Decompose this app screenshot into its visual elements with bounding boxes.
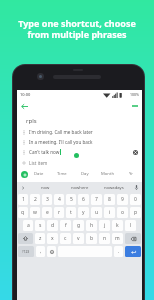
button[interactable]: Back (17, 99, 31, 113)
staticText: a (27, 222, 30, 229)
staticText: h (90, 222, 94, 229)
button[interactable]: l (125, 220, 136, 231)
staticText: w (33, 209, 37, 216)
button[interactable]: e (42, 207, 52, 218)
button[interactable]: Emoji (47, 246, 56, 257)
button[interactable]: m (112, 233, 123, 244)
button[interactable]: b (86, 233, 97, 244)
staticText: 4 (58, 196, 61, 203)
button[interactable]: q (18, 207, 28, 218)
button[interactable]: Shift (18, 233, 33, 244)
staticText: rpls (26, 117, 37, 125)
staticText: d (51, 222, 55, 229)
button[interactable]: More options (128, 99, 142, 113)
button[interactable]: c (60, 233, 71, 244)
staticText: , (40, 248, 42, 255)
staticText: now (41, 185, 50, 191)
staticText: 7 (95, 196, 98, 203)
button[interactable]: Date (28, 168, 50, 180)
staticText: n (103, 235, 107, 242)
staticText: 3 (46, 196, 49, 203)
button[interactable]: z (35, 233, 45, 244)
button[interactable]: 3 (42, 194, 52, 205)
staticText: c (64, 235, 67, 242)
button[interactable]: d (47, 220, 58, 231)
button[interactable]: , (36, 246, 45, 257)
button[interactable]: g (73, 220, 84, 231)
button[interactable]: f (60, 220, 71, 231)
staticText: o (121, 209, 125, 216)
button[interactable]: p (130, 207, 141, 218)
button[interactable]: 1 (18, 194, 28, 205)
button[interactable]: 6 (78, 194, 89, 205)
button[interactable]: 5 (66, 194, 76, 205)
button[interactable]: x (47, 233, 58, 244)
button[interactable]: o (117, 207, 128, 218)
button[interactable]: now (28, 182, 63, 193)
staticText: nowadays (104, 185, 124, 191)
button[interactable]: nowadays (97, 182, 131, 193)
button[interactable]: r (54, 207, 64, 218)
staticText: l (130, 222, 132, 229)
staticText: 8 (108, 196, 111, 203)
staticText: s (39, 222, 42, 229)
staticText: ?123 (22, 249, 30, 254)
staticText: 1 (22, 196, 25, 203)
staticText: r (58, 209, 61, 216)
button[interactable]: Day (73, 168, 96, 180)
staticText: y (82, 209, 85, 216)
staticText: Can't talk now (29, 149, 60, 155)
button[interactable]: Symbols (18, 246, 34, 257)
staticText: 6 (82, 196, 85, 203)
button[interactable]: s (35, 220, 45, 231)
button[interactable]: I'm driving. Call me back later (17, 127, 142, 137)
button[interactable]: h (86, 220, 97, 231)
staticText: . (118, 248, 120, 255)
button[interactable]: t (66, 207, 76, 218)
button[interactable]: . (114, 246, 123, 257)
button[interactable]: 4 (54, 194, 64, 205)
button[interactable]: n (99, 233, 110, 244)
button[interactable]: 0 (130, 194, 141, 205)
button[interactable]: k (112, 220, 123, 231)
button[interactable]: 9 (117, 194, 128, 205)
button[interactable]: Voice input (131, 182, 142, 193)
button[interactable]: Can't talk now (17, 147, 142, 157)
staticText: Yr (129, 171, 133, 177)
button[interactable]: Enter (125, 246, 141, 257)
button[interactable]: u (91, 207, 102, 218)
button[interactable]: 8 (104, 194, 115, 205)
button[interactable]: Insert variable (21, 171, 28, 178)
staticText: nowhere (71, 185, 89, 191)
staticText: i (109, 209, 111, 216)
button[interactable]: 7 (91, 194, 102, 205)
button[interactable]: List item (17, 157, 142, 168)
button[interactable]: j (99, 220, 110, 231)
button[interactable]: Clear (132, 149, 138, 155)
button[interactable]: Yr (119, 168, 142, 180)
button[interactable]: In a meeting. I'll call you back (17, 137, 142, 147)
staticText: Type one shortcut, choose from multiple … (18, 17, 136, 41)
button[interactable]: 2 (30, 194, 40, 205)
staticText: b (90, 235, 94, 242)
button[interactable]: Month (96, 168, 119, 180)
staticText: 9 (121, 196, 124, 203)
staticText: Date (34, 171, 44, 177)
button[interactable]: rpls (17, 114, 142, 127)
staticText: v (77, 235, 80, 242)
button[interactable]: y (78, 207, 89, 218)
staticText: q (21, 209, 25, 216)
staticText: I'm driving. Call me back later (29, 129, 93, 135)
button[interactable]: i (104, 207, 115, 218)
button[interactable]: Time (50, 168, 73, 180)
button[interactable]: nowhere (63, 182, 97, 193)
button[interactable]: w (30, 207, 40, 218)
staticText: u (95, 209, 99, 216)
button[interactable]: Backspace (125, 233, 141, 244)
staticText: Month (101, 171, 115, 177)
button[interactable]: More suggestions (17, 182, 28, 193)
button[interactable]: a (23, 220, 33, 231)
staticText: 0 (134, 196, 137, 203)
button[interactable]: v (73, 233, 84, 244)
